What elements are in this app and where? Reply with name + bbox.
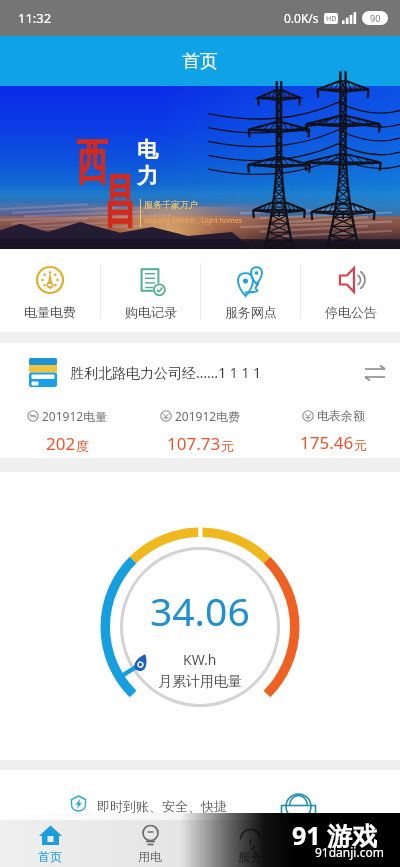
staticText: 34.06 bbox=[150, 584, 250, 637]
staticText: 力 bbox=[137, 163, 158, 189]
staticText: HD bbox=[326, 14, 337, 24]
button[interactable]: 电表余额 bbox=[267, 402, 400, 458]
button[interactable]: 电量电费 bbox=[0, 249, 100, 332]
button[interactable]: 用电 bbox=[100, 820, 200, 867]
staticText: 用电 bbox=[138, 849, 162, 864]
staticText: 服务 bbox=[238, 849, 262, 864]
button[interactable]: 我的 bbox=[300, 820, 400, 867]
staticText: 107.73 bbox=[167, 432, 221, 455]
staticText: 服务千家万户 bbox=[144, 199, 198, 210]
button[interactable]: 即时到账、安全、快捷 bbox=[0, 770, 400, 820]
staticText: 即时到账、安全、快捷 bbox=[97, 798, 227, 814]
staticText: 201912电费 bbox=[175, 408, 241, 424]
staticText: 胜利北路电力公司经……1 1 1 1 bbox=[70, 363, 262, 382]
staticText: 度 bbox=[76, 438, 89, 454]
staticText: 停电公告 bbox=[325, 304, 377, 320]
staticText: 0.0K/s bbox=[284, 10, 319, 26]
button[interactable]: 停电公告 bbox=[301, 249, 400, 332]
button[interactable]: 胜利北路电力公司经……1 1 1 1 bbox=[0, 343, 400, 402]
other: 切换账户 bbox=[364, 365, 386, 381]
other: 购电 bbox=[269, 793, 328, 820]
button[interactable]: 首页 bbox=[0, 820, 100, 867]
staticText: Xichang Electric , Light homes bbox=[144, 216, 242, 226]
staticText: 90 bbox=[370, 12, 381, 24]
staticText: 元 bbox=[354, 437, 367, 453]
button[interactable]: 服务网点 bbox=[201, 249, 300, 332]
button[interactable]: 201912电费 bbox=[134, 402, 267, 458]
staticText: 11:32 bbox=[18, 9, 52, 27]
staticText: 175.46 bbox=[300, 431, 354, 454]
staticText: 服务网点 bbox=[225, 304, 277, 320]
staticText: 91 游戏 bbox=[292, 818, 378, 852]
staticText: 首页 bbox=[182, 50, 218, 73]
button[interactable]: 购电记录 bbox=[101, 249, 200, 332]
staticText: 电 bbox=[137, 137, 158, 163]
staticText: KW.h bbox=[183, 650, 217, 669]
staticText: 91danji.com bbox=[315, 844, 384, 860]
staticText: 电表余额 bbox=[317, 408, 365, 423]
staticText: 月累计用电量 bbox=[158, 673, 242, 691]
button[interactable]: 201912电量 bbox=[0, 402, 134, 458]
staticText: 昌 bbox=[104, 165, 134, 238]
staticText: 首页 bbox=[38, 849, 62, 864]
staticText: 电量电费 bbox=[24, 304, 76, 320]
staticText: 西 bbox=[76, 131, 107, 194]
staticText: 202 bbox=[46, 432, 76, 455]
staticText: 201912电量 bbox=[42, 408, 108, 424]
button[interactable]: 服务 bbox=[200, 820, 300, 867]
staticText: 购电记录 bbox=[125, 304, 177, 320]
staticText: 我的 bbox=[338, 849, 362, 864]
staticText: 元 bbox=[221, 438, 234, 454]
